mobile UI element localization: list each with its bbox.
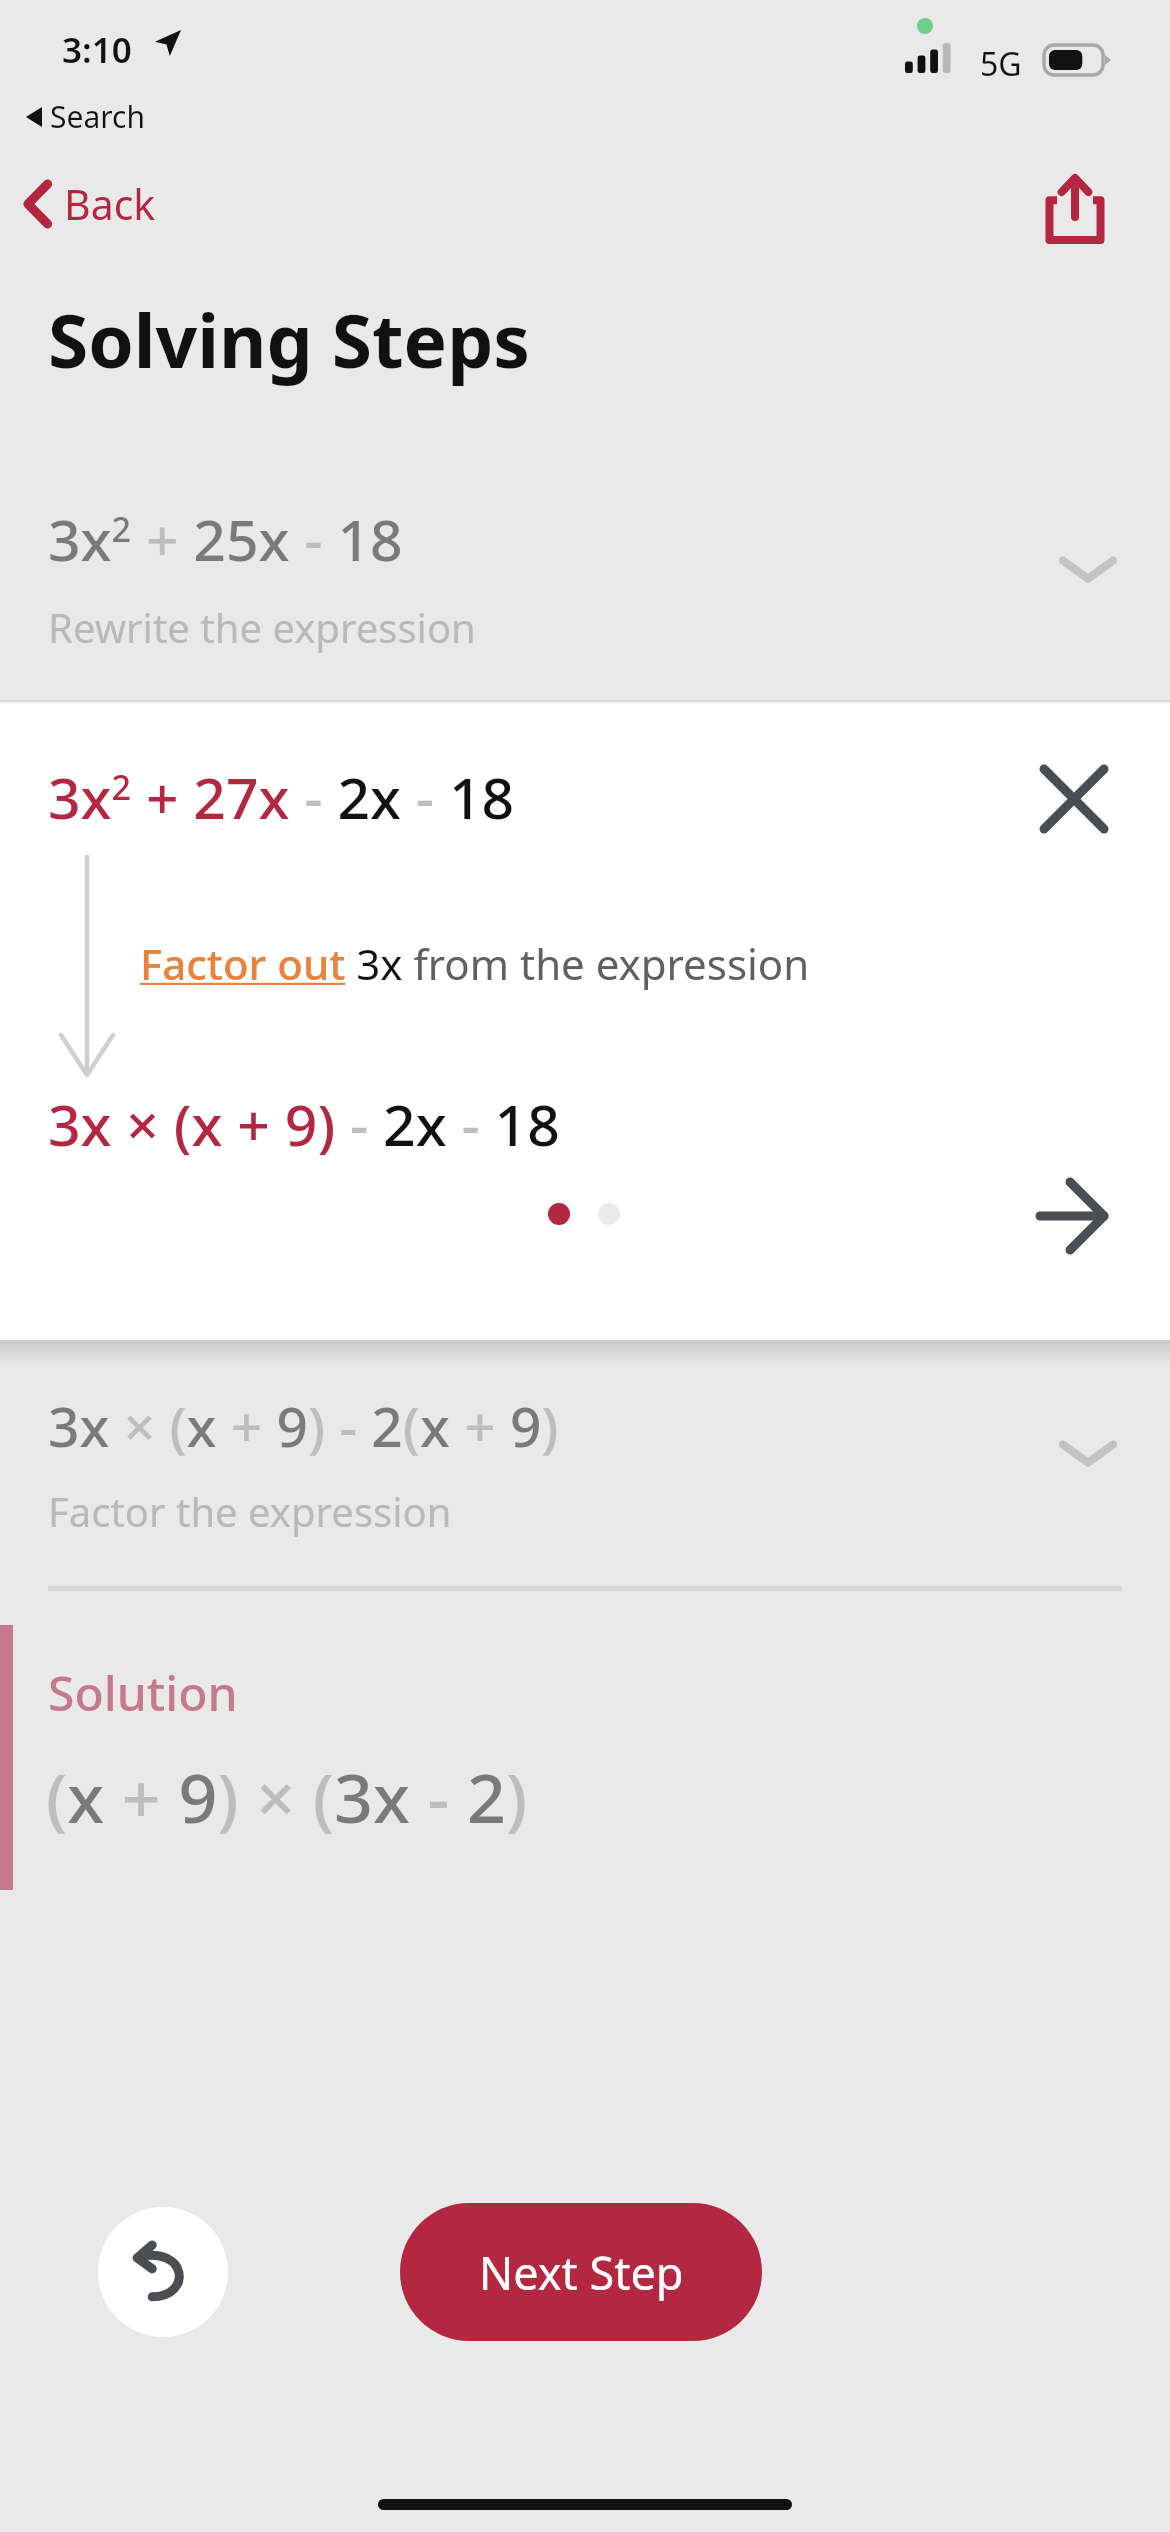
button[interactable]: Next Step <box>400 2203 762 2341</box>
button[interactable]: Next <box>1016 1160 1128 1272</box>
staticText: Solving Steps <box>48 290 530 389</box>
other: Expand <box>1055 1434 1121 1474</box>
button[interactable]: 3x × (x + 9) - 2(x + 9) <box>0 1366 1170 1586</box>
staticText: Back <box>64 176 156 232</box>
staticText: 3x2 + 27x - 2x - 18 <box>48 758 515 836</box>
staticText: Factor the expression <box>48 1484 452 1538</box>
button[interactable]: Undo <box>98 2207 228 2337</box>
button[interactable]: Search <box>20 92 151 141</box>
button[interactable] <box>548 1203 570 1225</box>
staticText: Next Step <box>479 2242 684 2303</box>
staticText: (x + 9) × (3x - 2) <box>46 1750 528 1843</box>
staticText: 3x × (x + 9) - 2x - 18 <box>48 1085 560 1163</box>
staticText: Search <box>50 96 145 137</box>
staticText: 3x2 + 25x - 18 <box>48 500 403 578</box>
button[interactable]: Close <box>1020 745 1128 853</box>
staticText: 3x × (x + 9) - 2(x + 9) <box>48 1388 559 1463</box>
button[interactable]: Factor out 3x from the expression <box>140 935 810 992</box>
other: Expand <box>1055 550 1121 590</box>
button[interactable] <box>598 1203 620 1225</box>
staticText: 5G <box>980 42 1022 86</box>
staticText: Rewrite the expression <box>48 600 476 654</box>
button[interactable]: Back <box>16 168 166 240</box>
staticText: Solution <box>48 1660 238 1725</box>
button[interactable]: 3x2 + 25x - 18 <box>0 460 1170 700</box>
staticText: 3:10 <box>62 26 132 74</box>
button[interactable]: Share <box>1030 160 1120 256</box>
